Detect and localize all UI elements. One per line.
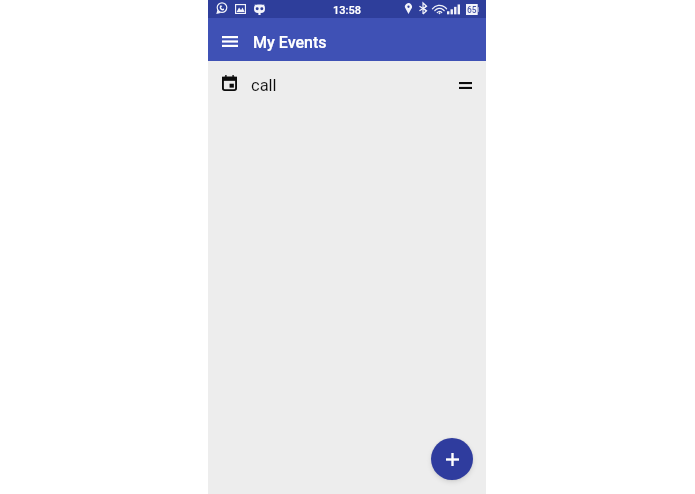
button[interactable]: Reorder event	[444, 66, 486, 104]
button[interactable]: Add event	[431, 438, 473, 480]
button[interactable]: Open navigation drawer	[212, 23, 248, 59]
staticText: 65	[467, 5, 477, 15]
staticText: My Events	[253, 33, 327, 52]
staticText: call	[251, 76, 277, 95]
button[interactable]: call	[208, 61, 486, 109]
staticText: 13:58	[333, 4, 361, 17]
